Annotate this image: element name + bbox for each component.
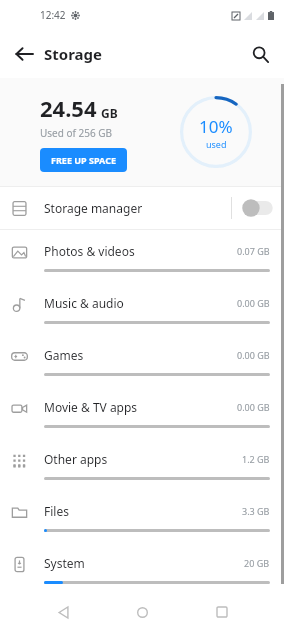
button[interactable]: Recents [205, 595, 239, 629]
staticText: Other apps [44, 451, 108, 467]
staticText: Storage manager [44, 200, 143, 216]
staticText: Games [44, 347, 84, 363]
button[interactable]: FREE UP SPACE [40, 148, 127, 172]
staticText: 0.00 GB [237, 401, 270, 413]
button[interactable]: Storage manager [0, 187, 284, 229]
button[interactable]: Games [0, 334, 284, 386]
button[interactable]: Storage manager toggle [242, 199, 274, 217]
staticText: Files [44, 503, 69, 519]
staticText: 20 GB [244, 557, 270, 569]
staticText: FREE UP SPACE [51, 154, 116, 166]
button[interactable]: Music & audio [0, 282, 284, 334]
button[interactable]: Back [46, 595, 80, 629]
staticText: 24.54 [40, 93, 97, 123]
button[interactable]: Photos & videos [0, 230, 284, 282]
staticText: 12:42 [40, 8, 66, 22]
staticText: 0.07 GB [237, 245, 270, 257]
staticText: Music & audio [44, 295, 124, 311]
staticText: Storage [44, 44, 102, 64]
staticText: 10% [199, 115, 233, 138]
button[interactable]: Back [6, 36, 42, 72]
staticText: GB [101, 105, 118, 121]
staticText: 3.3 GB [242, 505, 270, 517]
button[interactable]: Search [242, 36, 278, 72]
staticText: Used of 256 GB [40, 126, 113, 140]
staticText: 1.2 GB [242, 453, 270, 465]
staticText: System [44, 555, 85, 571]
staticText: 0.00 GB [237, 349, 270, 361]
staticText: Movie & TV apps [44, 399, 138, 415]
staticText: Photos & videos [44, 243, 135, 259]
button[interactable]: Other apps [0, 438, 284, 490]
button[interactable]: Movie & TV apps [0, 386, 284, 438]
staticText: 0.00 GB [237, 297, 270, 309]
button[interactable]: Files [0, 490, 284, 542]
button[interactable]: System [0, 542, 284, 594]
button[interactable]: Home [125, 595, 159, 629]
staticText: used [206, 138, 227, 150]
